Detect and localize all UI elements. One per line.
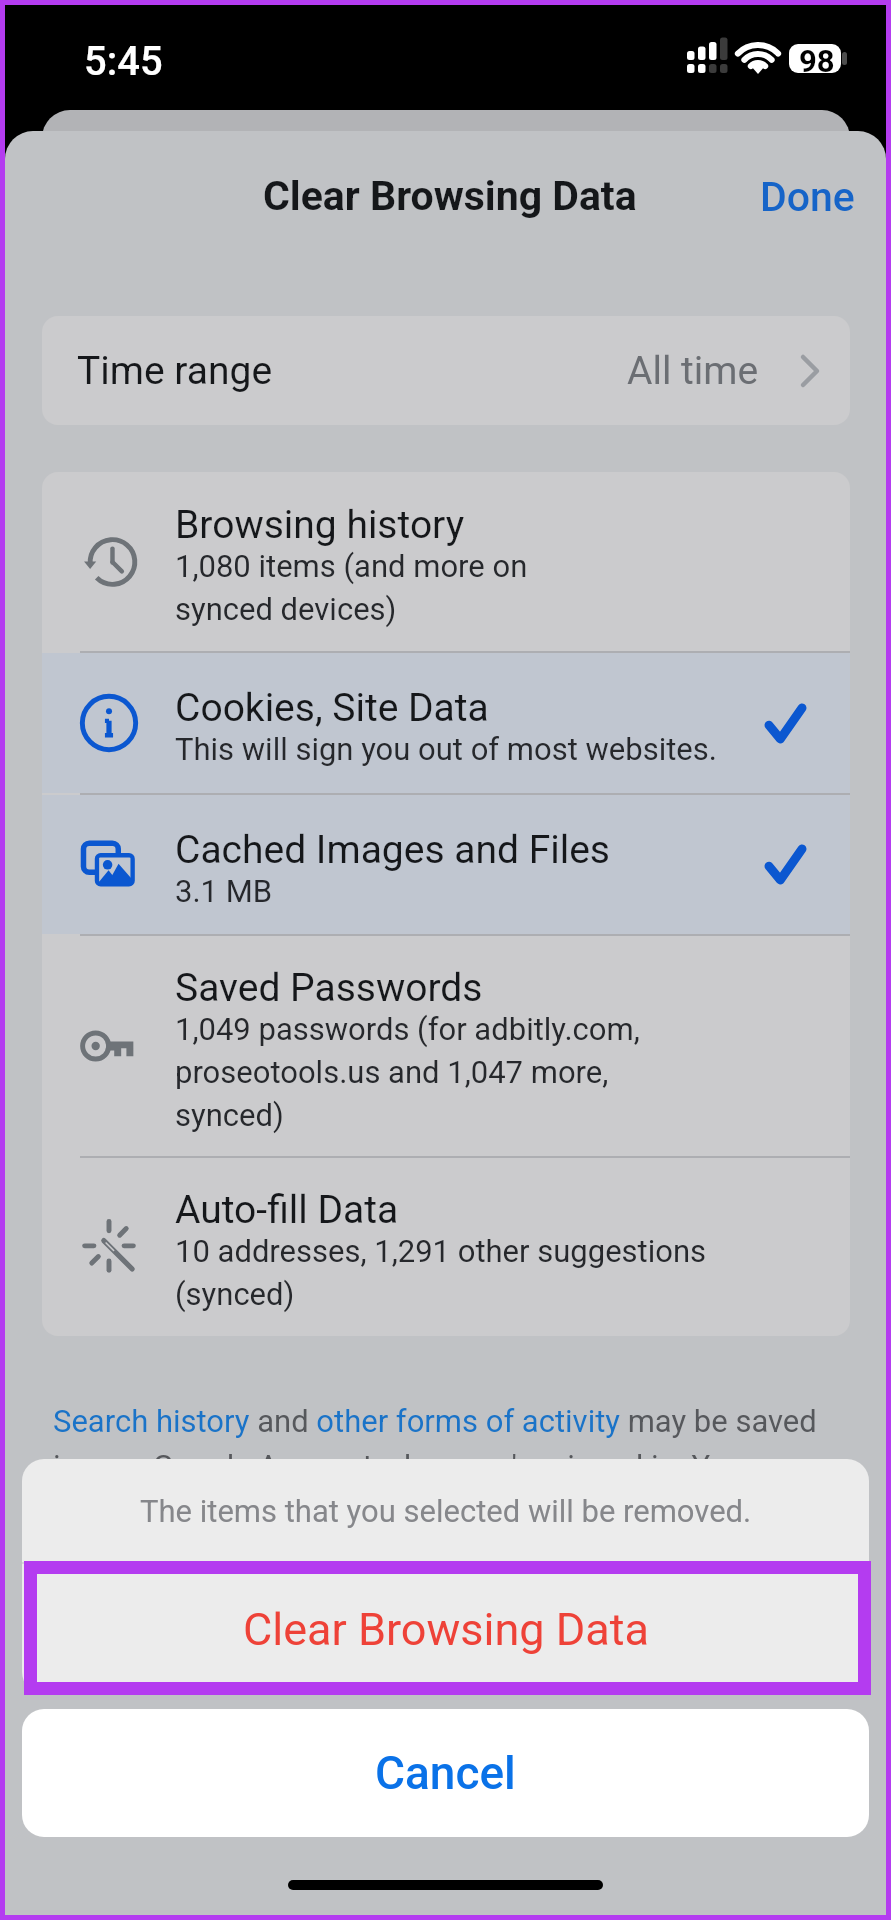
staticText: This will sign you out of most websites. xyxy=(175,731,717,767)
button[interactable]: Done xyxy=(745,159,870,235)
staticText: 5:45 xyxy=(84,38,163,85)
staticText: 1,049 passwords (for adbitly.com, proseo… xyxy=(175,1011,640,1134)
staticText: Done xyxy=(760,173,855,221)
staticText: Search history and other forms of activi… xyxy=(53,1403,843,1531)
staticText: 10 addresses, 1,291 other suggestions (s… xyxy=(175,1233,707,1313)
staticText: The items that you selected will be remo… xyxy=(140,1493,752,1529)
button[interactable]: Saved Passwords xyxy=(42,936,850,1156)
staticText: Cancel xyxy=(375,1746,516,1800)
staticText: Clear Browsing Data xyxy=(263,172,637,220)
button[interactable]: Auto-fill Data xyxy=(42,1158,850,1336)
staticText: Time range xyxy=(77,348,273,394)
staticText: Browsing history xyxy=(175,502,465,548)
button[interactable]: Browsing history xyxy=(42,472,850,651)
staticText: 1,080 items (and more on synced devices) xyxy=(175,548,528,628)
staticText: Cookies, Site Data xyxy=(175,685,489,731)
button[interactable]: Cached Images and Files xyxy=(42,795,850,934)
button[interactable]: Time range xyxy=(42,316,850,425)
button[interactable]: Cancel xyxy=(22,1709,869,1837)
staticText: Auto-fill Data xyxy=(175,1187,399,1233)
staticText: All time xyxy=(627,348,759,394)
staticText: Cached Images and Files xyxy=(175,827,610,873)
staticText: Clear Browsing Data xyxy=(243,1603,649,1656)
button[interactable]: Cookies, Site Data xyxy=(42,653,850,793)
staticText: 98 xyxy=(799,43,835,79)
staticText: 3.1 MB xyxy=(175,873,273,909)
button[interactable]: Clear Browsing Data xyxy=(22,1564,869,1694)
staticText: Saved Passwords xyxy=(175,965,483,1011)
